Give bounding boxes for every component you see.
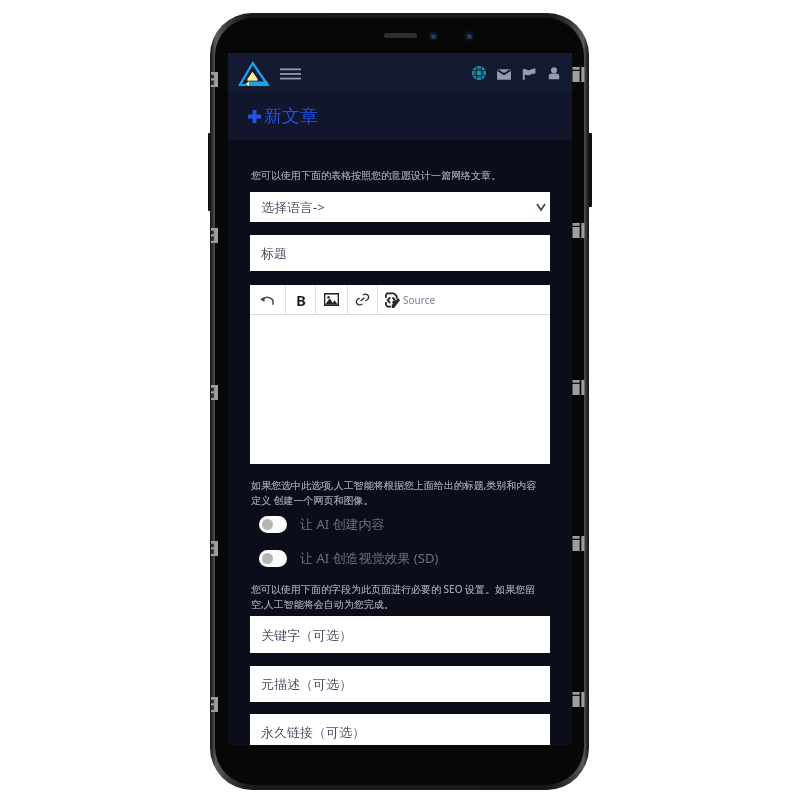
button[interactable]: Home	[235, 57, 270, 89]
button[interactable]: Reports	[518, 58, 540, 88]
staticText: 永久链接（可选）	[261, 724, 365, 740]
staticText: 您可以使用下面的字段为此页面进行必要的 SEO 设置。如果您留 空,人工智能将会…	[251, 582, 536, 611]
button[interactable]: 关键字（可选）	[250, 616, 550, 653]
button[interactable]: Image	[316, 285, 347, 314]
button[interactable]: Source	[378, 285, 436, 314]
button[interactable]: 让 AI 创建内容	[250, 512, 550, 536]
staticText: 选择语言->	[261, 198, 325, 216]
button[interactable]: 选择语言->	[250, 192, 550, 222]
staticText: 您可以使用下面的表格按照您的意愿设计一篇网络文章。	[251, 169, 501, 182]
staticText: 新文章	[264, 105, 318, 128]
button[interactable]: 新文章	[228, 93, 572, 140]
staticText: 让 AI 创建内容	[300, 515, 385, 533]
button[interactable]: Language	[468, 58, 490, 88]
button[interactable]: 元描述（可选）	[250, 666, 550, 702]
staticText: Source	[403, 293, 436, 307]
staticText: 元描述（可选）	[261, 676, 352, 692]
staticText: B	[296, 290, 306, 310]
button[interactable]: Menu	[278, 58, 303, 88]
staticText: 让 AI 创造视觉效果 (SD)	[300, 549, 439, 567]
staticText: 如果您选中此选项,人工智能将根据您上面给出的标题,类别和内容 定义 创建一个网页…	[251, 478, 537, 507]
button[interactable]: 让 AI 创造视觉效果 (SD)	[250, 546, 550, 570]
button[interactable]: Messages	[493, 58, 515, 88]
button[interactable]: 标题	[250, 235, 550, 271]
button[interactable]: Undo	[250, 285, 285, 314]
button[interactable]: 永久链接（可选）	[250, 714, 550, 745]
staticText: 关键字（可选）	[261, 627, 352, 643]
button[interactable]: Profile	[543, 58, 565, 88]
staticText: 标题	[261, 245, 287, 261]
button[interactable]: Link	[348, 285, 377, 314]
button[interactable]: Bold	[286, 285, 315, 314]
